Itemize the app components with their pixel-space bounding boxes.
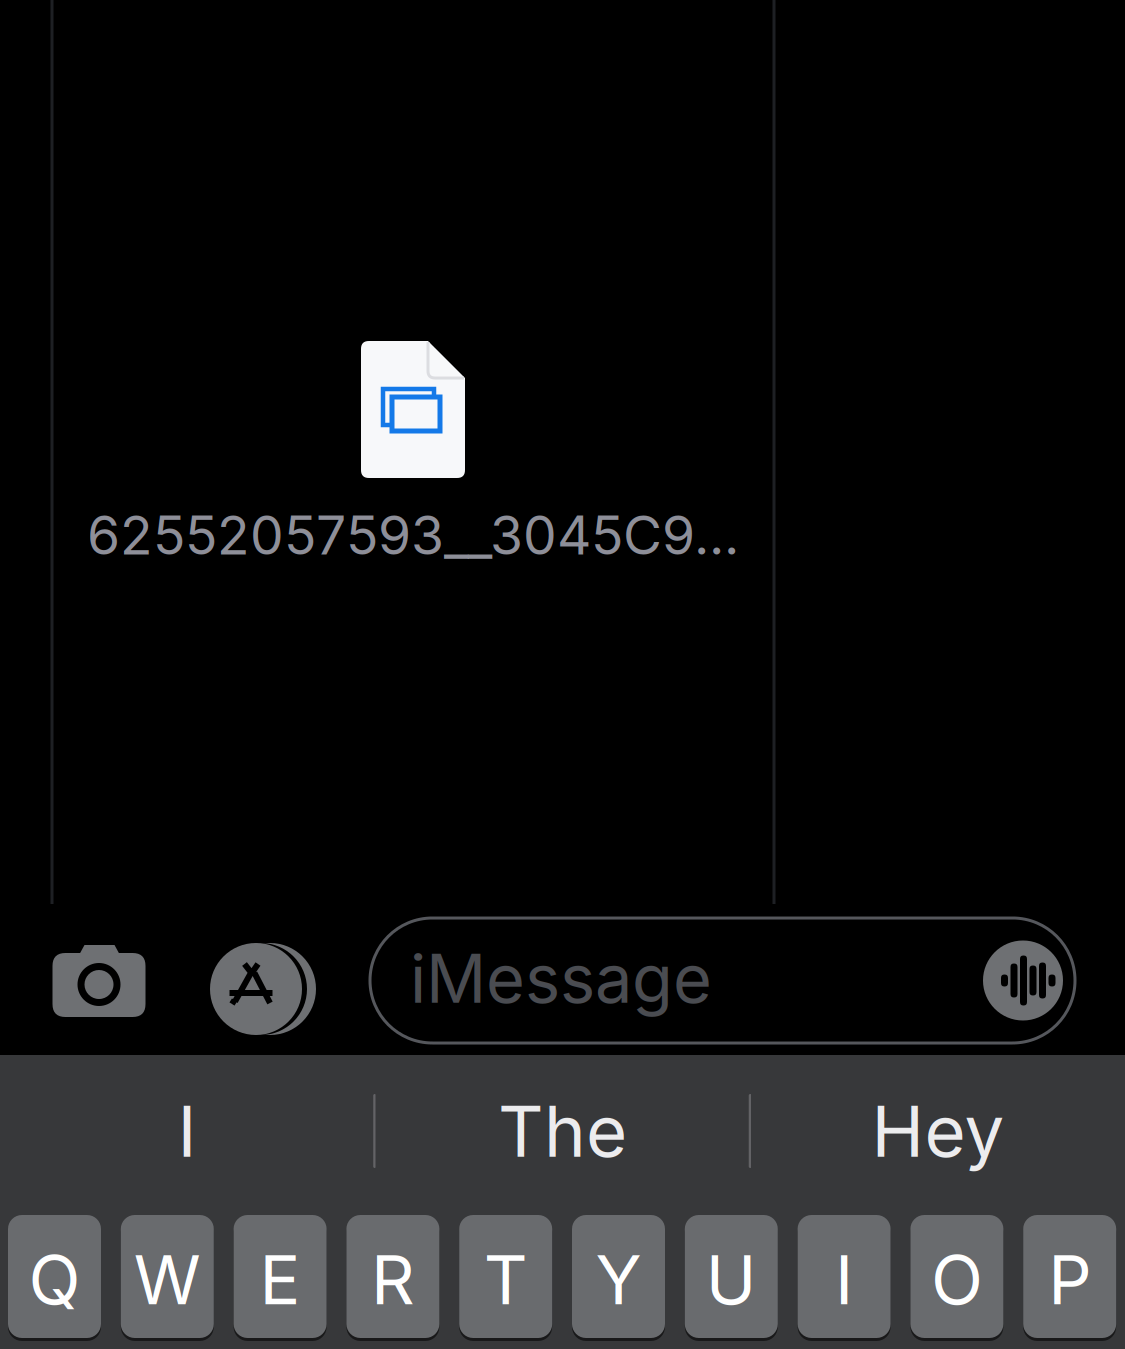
staticText: Q [28, 1238, 80, 1321]
staticText: T [484, 1238, 528, 1321]
button[interactable]: Apps [190, 929, 336, 1049]
staticText: E [260, 1238, 301, 1321]
button[interactable]: Hey [751, 1073, 1125, 1189]
staticText: iMessage [410, 938, 712, 1019]
staticText: R [371, 1238, 415, 1321]
button[interactable]: O [910, 1215, 1003, 1338]
staticText: Y [595, 1238, 641, 1321]
staticText: I [835, 1238, 853, 1321]
staticText: W [134, 1238, 201, 1321]
staticText: O [931, 1238, 983, 1321]
staticText: I [177, 1088, 196, 1174]
button[interactable]: R [346, 1215, 439, 1338]
staticText: The [498, 1088, 627, 1174]
button[interactable]: U [685, 1215, 778, 1338]
button[interactable]: Q [8, 1215, 101, 1338]
button[interactable]: T [459, 1215, 552, 1338]
button[interactable]: Camera [29, 921, 169, 1041]
button[interactable]: The [375, 1073, 749, 1189]
button[interactable]: E [234, 1215, 327, 1338]
button[interactable]: Record audio message [983, 940, 1063, 1020]
button[interactable]: I [0, 1073, 374, 1189]
staticText: Hey [871, 1088, 1004, 1174]
button[interactable]: Y [572, 1215, 665, 1338]
staticText: P [1048, 1238, 1091, 1321]
button[interactable]: P [1023, 1215, 1116, 1338]
button[interactable]: I [798, 1215, 891, 1338]
staticText: U [706, 1238, 757, 1321]
button[interactable]: W [121, 1215, 214, 1338]
staticText: 62552057593__3045C9... [87, 503, 739, 567]
